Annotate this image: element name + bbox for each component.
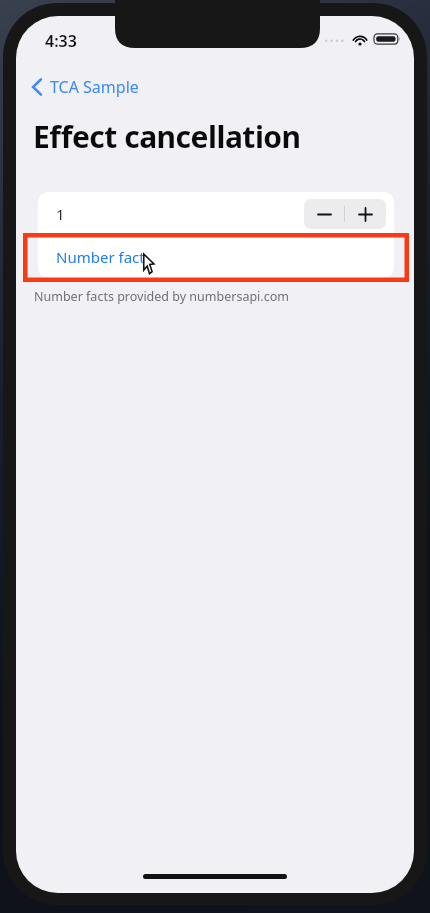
button[interactable]: Increment	[345, 199, 386, 229]
staticText: 1	[56, 204, 65, 224]
staticText: TCA Sample	[50, 76, 139, 98]
button[interactable]: TCA Sample	[26, 72, 149, 102]
button[interactable]: Number fact	[38, 236, 394, 278]
staticText: Number fact	[56, 247, 145, 267]
button[interactable]: Decrement	[304, 199, 344, 229]
staticText: Number facts provided by numbersapi.com	[34, 288, 394, 305]
staticText: Effect cancellation	[33, 116, 301, 157]
staticText: 4:33	[45, 30, 77, 52]
